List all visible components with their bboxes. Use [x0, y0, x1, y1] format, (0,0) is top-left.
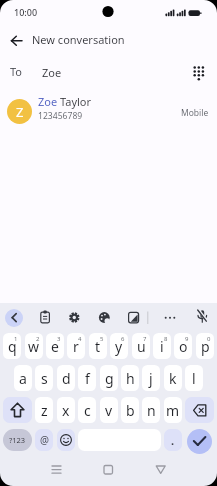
staticText: 123456789 [38, 110, 83, 122]
button[interactable] [5, 309, 23, 327]
button[interactable]: e [46, 333, 64, 359]
staticText: n [147, 401, 156, 420]
button[interactable]: a [14, 365, 32, 391]
button[interactable]: q [3, 333, 21, 359]
staticText: x [62, 401, 70, 420]
button[interactable]: o [174, 333, 192, 359]
staticText: r [73, 337, 79, 356]
button[interactable] [6, 34, 26, 49]
staticText: b [126, 401, 135, 420]
button[interactable]: ?123 [3, 429, 32, 451]
button[interactable]: k [164, 365, 182, 391]
staticText: New conversation [32, 32, 125, 47]
staticText: e [51, 337, 59, 356]
button[interactable]: . [164, 429, 182, 451]
staticText: c [84, 401, 91, 420]
button[interactable]: c [78, 397, 96, 423]
button[interactable]: x [57, 397, 75, 423]
staticText: s [41, 369, 48, 388]
staticText: Zoe [42, 65, 62, 80]
button[interactable]: s [35, 365, 53, 391]
staticText: 0 [207, 335, 211, 343]
staticText: 7 [143, 335, 147, 343]
button[interactable] [65, 308, 83, 326]
button[interactable] [193, 308, 211, 326]
button[interactable] [187, 429, 212, 454]
button[interactable] [36, 308, 54, 326]
button[interactable]: j [142, 365, 160, 391]
button[interactable] [95, 458, 121, 482]
staticText: v [105, 401, 113, 420]
staticText: 10:00 [14, 6, 38, 18]
staticText: Mobile [181, 107, 209, 119]
staticText: m [166, 401, 180, 420]
staticText: 4 [78, 335, 82, 343]
button[interactable]: i [153, 333, 171, 359]
staticText: 2 [36, 335, 40, 343]
staticText: q [8, 337, 17, 356]
staticText: 5 [100, 335, 104, 343]
staticText: 6 [121, 335, 125, 343]
staticText: 3 [57, 335, 61, 343]
staticText: ?123 [9, 435, 26, 445]
staticText: Z [16, 103, 24, 121]
button[interactable]: t [89, 333, 107, 359]
staticText: u [137, 337, 146, 356]
button[interactable]: @ [35, 429, 53, 451]
button[interactable] [188, 62, 210, 84]
button[interactable]: g [100, 365, 118, 391]
staticText: k [169, 369, 177, 388]
button[interactable] [44, 458, 70, 482]
staticText: a [19, 369, 27, 388]
button[interactable] [95, 308, 113, 326]
staticText: g [105, 369, 114, 388]
button[interactable]: b [121, 397, 139, 423]
button[interactable]: p [196, 333, 214, 359]
button[interactable] [157, 308, 175, 326]
button[interactable]: y [110, 333, 128, 359]
staticText: j [149, 369, 153, 388]
staticText: Zoe Taylor [38, 94, 92, 109]
staticText: 9 [185, 335, 189, 343]
button[interactable] [185, 397, 214, 423]
button[interactable] [124, 308, 142, 326]
button[interactable]: v [100, 397, 118, 423]
staticText: 1 [14, 335, 18, 343]
staticText: o [179, 337, 188, 356]
button[interactable] [3, 397, 32, 423]
button[interactable] [57, 429, 75, 451]
staticText: 8 [164, 335, 168, 343]
button[interactable]: f [78, 365, 96, 391]
staticText: d [62, 369, 71, 388]
staticText: t [95, 337, 101, 356]
button[interactable]: w [25, 333, 43, 359]
staticText: @ [40, 433, 49, 447]
button[interactable]: m [164, 397, 182, 423]
staticText: p [201, 337, 210, 356]
button[interactable]: z [35, 397, 53, 423]
button[interactable]: d [57, 365, 75, 391]
staticText: w [28, 337, 40, 356]
button[interactable]: n [142, 397, 160, 423]
staticText: h [126, 369, 135, 388]
staticText: f [85, 369, 90, 388]
staticText: To [10, 64, 23, 79]
button[interactable] [147, 458, 173, 482]
staticText: y [115, 337, 123, 356]
button[interactable]: r [67, 333, 85, 359]
button[interactable]: u [132, 333, 150, 359]
staticText: i [160, 337, 164, 356]
staticText: z [41, 401, 48, 420]
staticText: . [171, 433, 175, 448]
button[interactable]: h [121, 365, 139, 391]
button[interactable]: l [185, 365, 203, 391]
button[interactable]: Z [7, 99, 32, 124]
staticText: l [192, 369, 196, 388]
